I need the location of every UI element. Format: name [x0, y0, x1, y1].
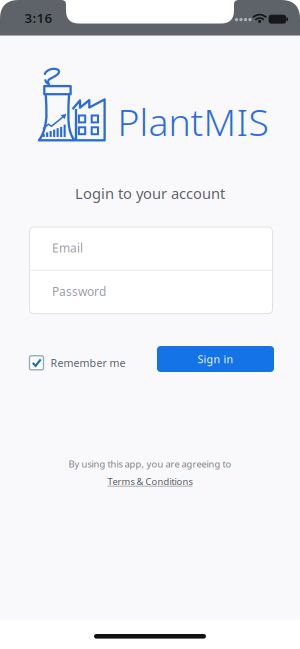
staticText: Password [52, 283, 106, 299]
staticText: PlantMIS [117, 97, 268, 146]
staticText: Sign in [197, 352, 233, 366]
staticText: Remember me [50, 356, 125, 370]
button[interactable]: Terms & Conditions [107, 475, 192, 487]
button[interactable]: Email [29, 227, 272, 269]
staticText: 3:16 [24, 9, 52, 27]
button[interactable]: Password [29, 270, 272, 312]
staticText: By using this app, you are agreeing to [68, 458, 231, 470]
staticText: Terms & Conditions [107, 475, 192, 487]
button[interactable]: Sign in [157, 346, 274, 372]
staticText: Email [52, 240, 83, 256]
staticText: Login to your account [75, 184, 225, 203]
button[interactable]: Remember me [29, 356, 125, 370]
